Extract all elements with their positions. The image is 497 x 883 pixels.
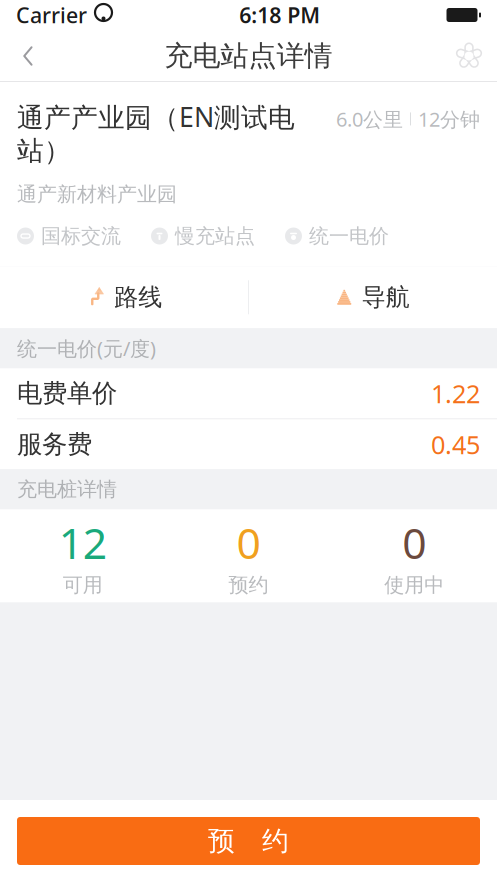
staticText: 预 约	[208, 825, 289, 857]
staticText: 统一电价(元/度)	[17, 335, 156, 362]
staticText: 12分钟	[418, 106, 480, 132]
button[interactable]: 预 约	[17, 817, 480, 865]
staticText: 路线	[114, 283, 162, 312]
staticText: 可用	[63, 573, 103, 597]
button[interactable]: 导航	[248, 266, 497, 328]
staticText: 预约	[228, 573, 268, 597]
staticText: 充电桩详情	[17, 477, 117, 502]
staticText: 通产产业园（EN测试电站）	[17, 99, 295, 167]
staticText: 6:18 PM	[239, 1, 320, 29]
staticText: 0	[402, 514, 426, 571]
staticText: 0.45	[431, 427, 480, 461]
button[interactable]: 路线	[0, 266, 248, 328]
staticText: 统一电价	[309, 224, 389, 248]
staticText: 慢充站点	[175, 224, 255, 248]
staticText: 充电站点详情	[164, 39, 332, 73]
staticText: 1.22	[431, 376, 480, 410]
staticText: 导航	[362, 283, 410, 312]
staticText: Carrier	[16, 1, 87, 29]
button[interactable]: 收藏	[441, 30, 497, 82]
staticText: 电费单价	[17, 378, 117, 409]
staticText: 通产新材料产业园	[17, 182, 177, 207]
staticText: 6.0公里	[336, 106, 403, 132]
staticText: 使用中	[384, 573, 444, 597]
button[interactable]: 返回	[0, 30, 56, 82]
staticText: 12	[59, 514, 107, 571]
staticText: 0	[236, 514, 260, 571]
staticText: 国标交流	[41, 224, 121, 248]
staticText: 服务费	[17, 429, 92, 460]
